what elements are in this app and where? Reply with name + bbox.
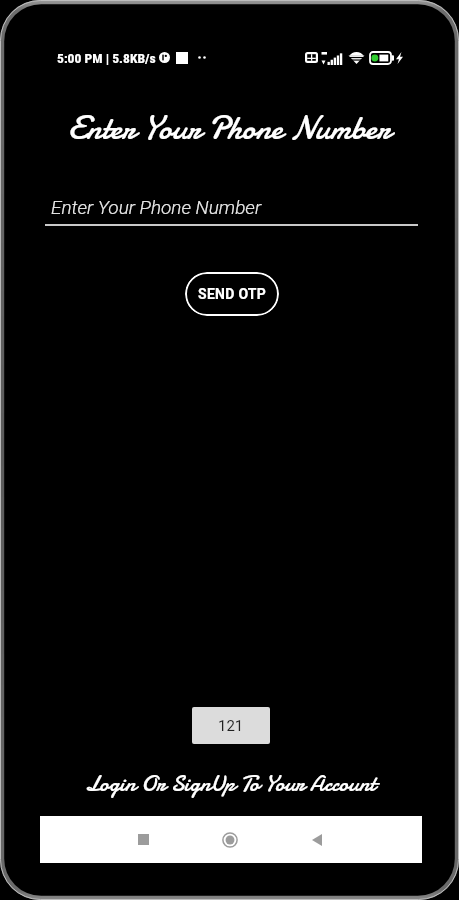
- button[interactable]: Login Or SignUp To Your Account: [85, 768, 376, 799]
- button[interactable]: Recent apps: [112, 816, 174, 863]
- staticText: SEND OTP: [198, 286, 267, 302]
- staticText: Enter Your Phone Number: [51, 196, 262, 218]
- button[interactable]: Back: [286, 816, 348, 863]
- button[interactable]: Enter Your Phone Number: [45, 196, 418, 226]
- button[interactable]: 121: [192, 707, 270, 744]
- staticText: Enter Your Phone Number: [68, 106, 391, 151]
- button[interactable]: Home: [199, 816, 261, 863]
- button[interactable]: SEND OTP: [185, 272, 279, 316]
- staticText: 5:00 PM | 5.8KB/s: [57, 50, 156, 66]
- staticText: 121: [218, 717, 244, 735]
